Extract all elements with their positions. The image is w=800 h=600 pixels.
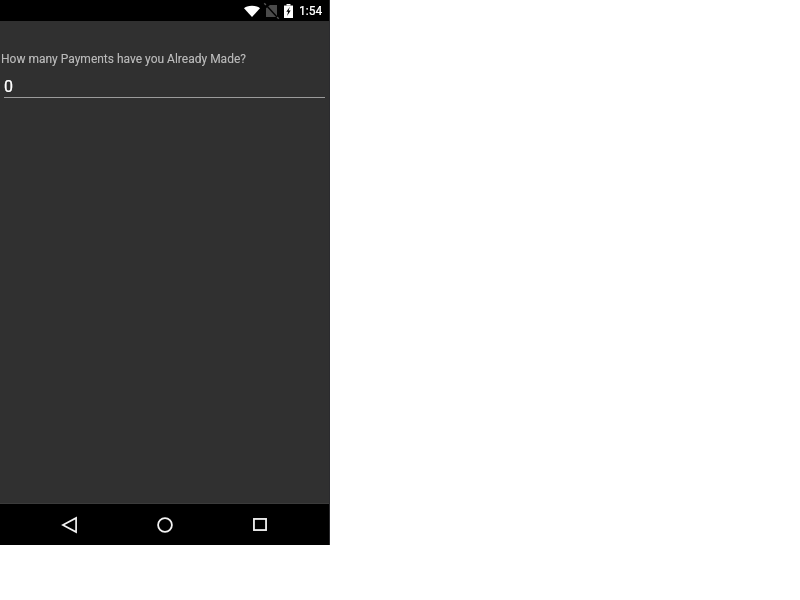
- button[interactable]: 0: [4, 77, 325, 98]
- staticText: 0: [4, 77, 13, 96]
- button[interactable]: Recent apps: [232, 504, 288, 545]
- button[interactable]: Back: [41, 504, 97, 545]
- staticText: How many Payments have you Already Made?: [1, 52, 246, 66]
- button[interactable]: Home: [137, 504, 193, 545]
- staticText: 1:54: [299, 4, 323, 18]
